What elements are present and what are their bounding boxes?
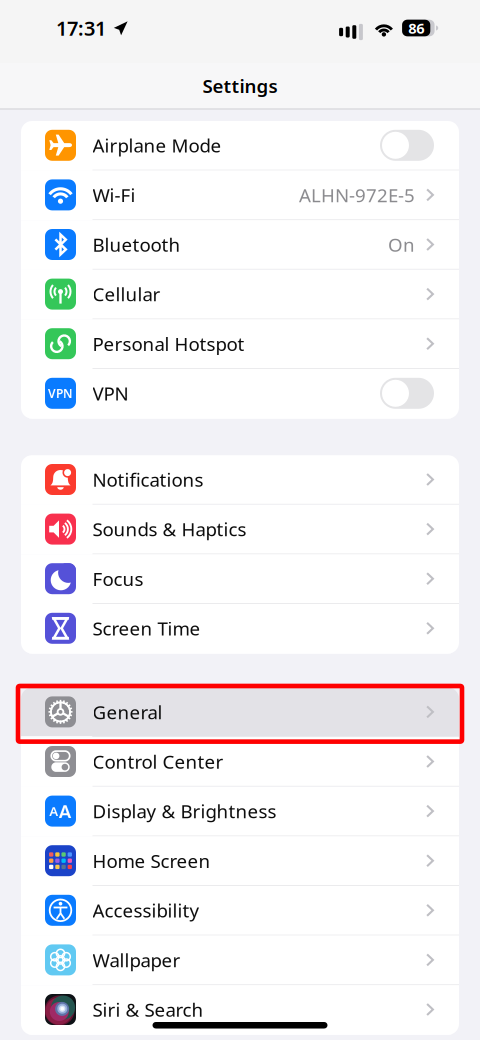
button[interactable]: Control Center [21, 737, 459, 787]
staticText: On [388, 232, 415, 257]
button[interactable]: Screen Time [21, 604, 459, 654]
staticText: Sounds & Haptics [92, 517, 246, 541]
button[interactable]: Sounds & Haptics [21, 505, 459, 554]
staticText: Wallpaper [92, 947, 180, 972]
staticText: VPN [92, 381, 128, 406]
button[interactable]: Siri & Search [21, 985, 459, 1035]
staticText: VPN [48, 385, 73, 401]
staticText: 86 [408, 18, 424, 38]
staticText: Bluetooth [92, 232, 180, 257]
staticText: General [92, 699, 162, 724]
button[interactable]: Home Screen [21, 836, 459, 886]
button[interactable]: Personal Hotspot [21, 319, 459, 369]
staticText: Focus [92, 566, 143, 591]
staticText: Wi-Fi [92, 182, 135, 207]
staticText: Display & Brightness [92, 799, 276, 823]
button[interactable]: A [21, 787, 459, 836]
staticText: Control Center [92, 749, 223, 774]
staticText: Home Screen [92, 848, 210, 873]
button[interactable]: Wi-Fi [21, 171, 459, 220]
staticText: Personal Hotspot [92, 331, 244, 356]
button[interactable]: Notifications [21, 455, 459, 505]
staticText: 17:31 [56, 15, 106, 41]
staticText: Settings [202, 73, 277, 98]
staticText: Siri & Search [92, 997, 203, 1022]
staticText: A [59, 799, 72, 823]
button[interactable]: Cellular [21, 270, 459, 319]
button[interactable]: General [21, 688, 459, 737]
button[interactable]: Wallpaper [21, 936, 459, 985]
staticText: Cellular [92, 282, 160, 306]
staticText: Airplane Mode [92, 133, 221, 158]
staticText: A [49, 802, 58, 820]
staticText: ALHN-972E-5 [299, 182, 415, 207]
button[interactable]: Focus [21, 554, 459, 604]
button[interactable]: Airplane Mode [21, 121, 459, 171]
staticText: Accessibility [92, 898, 199, 923]
button[interactable]: Accessibility [21, 886, 459, 936]
button[interactable]: Bluetooth [21, 220, 459, 270]
button[interactable]: VPN [21, 369, 459, 419]
staticText: Notifications [92, 467, 203, 492]
staticText: Screen Time [92, 616, 200, 641]
